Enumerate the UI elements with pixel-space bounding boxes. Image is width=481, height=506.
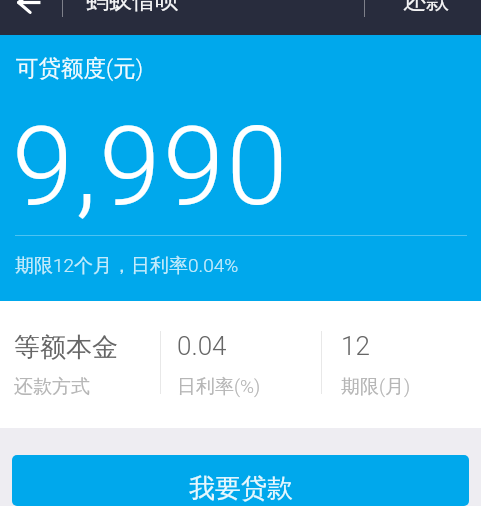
staticText: 等额本金 [14,331,118,364]
button[interactable]: 还款 [401,0,481,35]
staticText: 蚂蚁借呗 [86,0,178,15]
staticText: 9,990 [12,102,291,231]
staticText: 可贷额度(元) [16,54,144,82]
staticText: 0.04 [177,331,227,361]
staticText: 我要贷款 [189,472,293,505]
button[interactable]: Back [0,0,62,35]
staticText: 还款方式 [14,375,90,399]
staticText: 日利率(%) [177,375,261,399]
staticText: 12 [341,331,370,361]
staticText: 期限12个月，日利率0.04% [15,254,239,278]
staticText: 还款 [403,0,449,15]
button[interactable]: 我要贷款 [12,455,469,506]
staticText: 期限(月) [341,375,411,399]
